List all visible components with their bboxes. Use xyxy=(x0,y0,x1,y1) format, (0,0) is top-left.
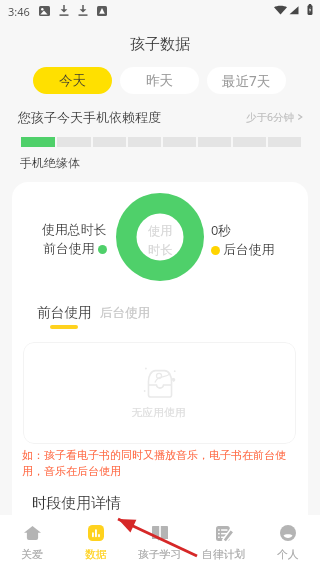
button[interactable]: 昨天 xyxy=(120,67,199,94)
staticText: 前台使用 xyxy=(37,304,92,321)
other: 自律计划 xyxy=(216,526,233,541)
staticText: 0秒 xyxy=(211,221,232,239)
staticText: 时段使用详情 xyxy=(32,494,121,513)
staticText: 3:46 xyxy=(8,4,30,19)
staticText: 昨天 xyxy=(146,72,173,89)
staticText: 自律计划 xyxy=(202,548,246,562)
button[interactable]: 最近7天 xyxy=(207,67,286,94)
staticText: 最近7天 xyxy=(222,72,271,90)
staticText: 时长 xyxy=(148,242,173,257)
staticText: 孩子学习 xyxy=(138,548,182,562)
staticText: 孩子数据 xyxy=(130,35,190,54)
button[interactable]: 今天 xyxy=(33,67,112,94)
staticText: 手机绝缘体 xyxy=(20,155,80,170)
staticText: 个人 xyxy=(277,548,299,562)
other: 关爱 xyxy=(24,526,41,540)
staticText: 后台使用 xyxy=(100,305,151,321)
button[interactable]: 后台使用 xyxy=(100,305,151,321)
button[interactable]: 自律计划 xyxy=(192,515,256,562)
button[interactable]: 孩子学习 xyxy=(128,515,192,562)
staticText: 您孩子今天手机依赖程度 xyxy=(18,109,161,125)
staticText: 无应用使用 xyxy=(23,406,295,420)
other: 数据 xyxy=(88,525,104,541)
staticText: 今天 xyxy=(59,72,86,89)
button[interactable]: 数据 xyxy=(64,515,128,562)
button[interactable]: 个人 xyxy=(256,515,320,562)
button[interactable]: 您孩子今天手机依赖程度 xyxy=(18,106,304,128)
staticText: 如：孩子看电子书的同时又播放音乐，电子书在前台使用，音乐在后台使用 xyxy=(22,448,294,478)
button[interactable]: 关爱 xyxy=(0,515,64,562)
button[interactable]: 前台使用 xyxy=(37,304,92,321)
staticText: 后台使用 xyxy=(223,242,275,258)
other: 孩子学习 xyxy=(152,526,168,541)
staticText: 前台使用 xyxy=(43,241,95,257)
staticText: 数据 xyxy=(85,548,107,562)
other: 个人 xyxy=(280,525,296,541)
staticText: 少于6分钟 xyxy=(246,110,295,124)
staticText: 使用总时长 xyxy=(42,222,107,238)
staticText: 关爱 xyxy=(21,548,43,562)
staticText: 使用 xyxy=(148,223,173,238)
